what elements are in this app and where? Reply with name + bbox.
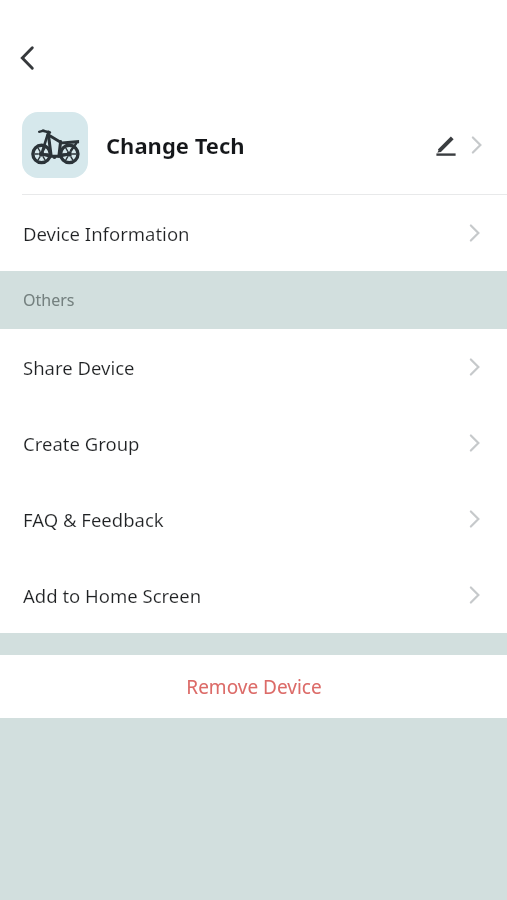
staticText: Create Group [23,431,140,456]
staticText: Others [23,289,75,311]
staticText: Remove Device [186,674,322,700]
button[interactable]: Add to Home Screen [0,557,507,633]
button[interactable]: Share Device [0,329,507,405]
button[interactable]: Remove Device [0,655,507,718]
staticText: Add to Home Screen [23,583,202,608]
staticText: Share Device [23,355,135,380]
staticText: Device Information [23,221,190,246]
staticText: FAQ & Feedback [23,507,164,532]
staticText: Change Tech [106,130,245,160]
button[interactable]: Create Group [0,405,507,481]
button[interactable]: Change Tech [0,96,507,194]
button[interactable]: FAQ & Feedback [0,481,507,557]
button[interactable]: Rename device [431,130,461,160]
button[interactable]: Back [10,41,44,75]
button[interactable]: Device Information [0,195,507,271]
